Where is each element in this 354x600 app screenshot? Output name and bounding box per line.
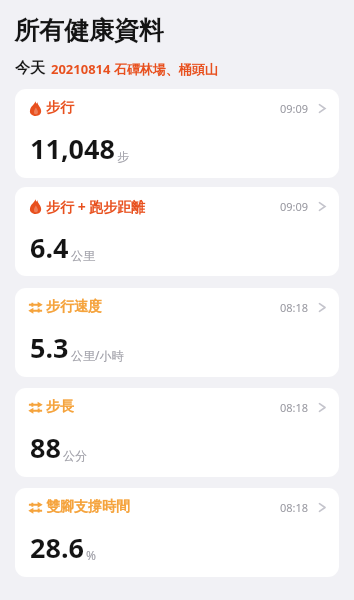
staticText: 28.6 [30,529,84,566]
staticText: 5.3 [30,329,69,366]
staticText: 09:09 [280,199,309,214]
staticText: 所有健康資料 [14,15,164,46]
staticText: 公分 [63,448,87,463]
other: Show details for 步行 + 跑步距離 [318,200,326,213]
other: Show details for 步長 [318,401,326,414]
staticText: 6.4 [30,229,69,266]
other: Show details for 步行速度 [318,301,326,314]
staticText: 09:09 [280,101,309,116]
staticText: 88 [30,429,61,466]
staticText: 步行速度 [46,298,102,316]
button[interactable]: 步長 [15,388,339,477]
staticText: 雙腳支撐時間 [46,498,130,516]
button[interactable]: 步行 [15,89,339,178]
button[interactable]: 步行速度 [15,288,339,377]
staticText: 20210814 石磹林場、桶頭山 [51,60,218,78]
other: Show details for 步行 [318,102,326,115]
staticText: 公里 [71,248,95,263]
button[interactable]: 步行 + 跑步距離 [15,187,339,276]
other: Show details for 雙腳支撐時間 [318,501,326,514]
button[interactable]: 雙腳支撐時間 [15,488,339,577]
button[interactable]: 所有健康資料 [14,15,164,46]
staticText: % [86,547,96,563]
staticText: 08:18 [280,300,309,315]
staticText: 步 [117,149,129,164]
staticText: 08:18 [280,400,309,415]
staticText: 今天 [15,59,45,78]
staticText: 11,048 [30,130,115,167]
staticText: 步行 [46,99,74,117]
staticText: 步長 [46,398,74,416]
staticText: 08:18 [280,500,309,515]
staticText: 步行 + 跑步距離 [46,197,146,216]
staticText: 公里/小時 [71,347,124,363]
